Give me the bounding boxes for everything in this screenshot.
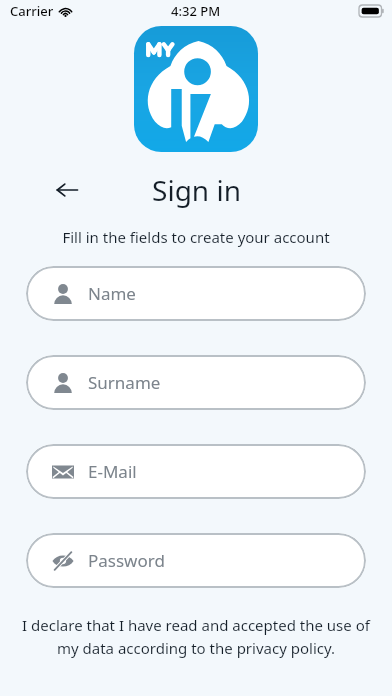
staticText: Name [88,282,136,305]
staticText: Surname [88,371,161,394]
staticText: 4:32 PM [171,2,221,20]
button[interactable]: Password [26,533,366,588]
staticText: Carrier [10,2,54,20]
button[interactable]: Name [26,266,366,321]
staticText: Sign in [152,171,241,209]
staticText: Password [88,549,165,572]
button[interactable]: Surname [26,355,366,410]
staticText: E-Mail [88,460,137,483]
button[interactable]: Back [48,171,86,209]
staticText: Fill in the fields to create your accoun… [0,227,392,247]
button[interactable]: E-Mail [26,444,366,499]
staticText: I declare that I have read and accepted … [22,615,370,658]
